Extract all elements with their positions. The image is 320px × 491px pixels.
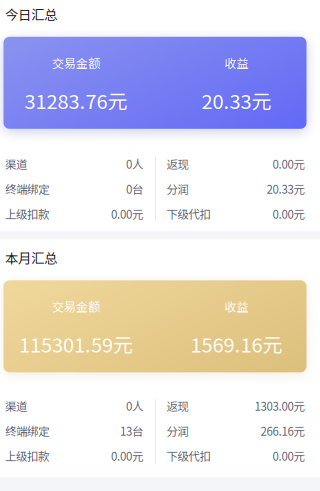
staticText: 交易金额: [52, 298, 100, 315]
staticText: 上级扣款: [5, 205, 49, 222]
staticText: 0.00元: [272, 205, 304, 222]
staticText: 终端绑定: [5, 422, 49, 439]
staticText: 115301.59元: [19, 329, 133, 358]
staticText: 收益: [224, 54, 248, 71]
staticText: 0.00元: [272, 447, 304, 464]
staticText: 渠道: [5, 397, 27, 414]
staticText: 下级代扣: [166, 447, 210, 464]
staticText: 0人: [126, 397, 143, 414]
staticText: 今日汇总: [5, 4, 57, 24]
staticText: 0台: [126, 180, 143, 197]
staticText: 20.33元: [266, 180, 304, 197]
staticText: 0人: [126, 155, 143, 172]
staticText: 上级扣款: [5, 447, 49, 464]
staticText: 分润: [166, 422, 188, 439]
staticText: 0.00元: [111, 205, 143, 222]
staticText: 交易金额: [52, 54, 100, 71]
staticText: 0.00元: [272, 155, 304, 172]
staticText: 1303.00元: [254, 397, 304, 414]
staticText: 返现: [166, 397, 188, 414]
staticText: 收益: [224, 298, 248, 315]
staticText: 13台: [120, 422, 143, 439]
staticText: 20.33元: [201, 86, 271, 115]
staticText: 0.00元: [111, 447, 143, 464]
staticText: 1569.16元: [190, 329, 282, 358]
staticText: 终端绑定: [5, 180, 49, 197]
staticText: 渠道: [5, 155, 27, 172]
staticText: 本月汇总: [5, 248, 57, 267]
staticText: 31283.76元: [24, 86, 127, 115]
staticText: 分润: [166, 180, 188, 197]
staticText: 下级代扣: [166, 205, 210, 222]
staticText: 266.16元: [260, 422, 304, 439]
staticText: 返现: [166, 155, 188, 172]
